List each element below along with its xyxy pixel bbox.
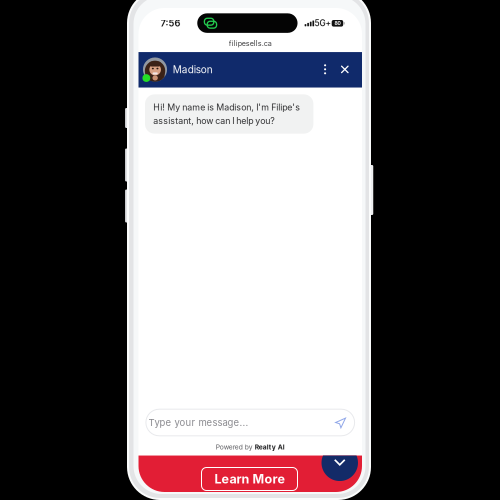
- button[interactable]: More options: [316, 56, 334, 82]
- staticText: Hi! My name is Madison, I'm Filipe's ass…: [153, 102, 300, 126]
- staticText: Madison: [173, 64, 213, 76]
- staticText: Learn More: [214, 471, 284, 487]
- staticText: Powered by: [216, 443, 253, 451]
- button[interactable]: Minimise chat: [321, 455, 358, 481]
- staticText: filipesells.ca: [229, 39, 272, 48]
- staticText: 80: [334, 20, 340, 26]
- button[interactable]: Send message: [329, 412, 351, 434]
- button[interactable]: Close chat: [335, 56, 355, 82]
- button[interactable]: Learn More: [201, 467, 297, 490]
- staticText: 5G+: [314, 18, 331, 28]
- staticText: Type your message...: [148, 417, 248, 428]
- staticText: Realty AI: [255, 443, 285, 451]
- staticText: 7:56: [160, 18, 180, 29]
